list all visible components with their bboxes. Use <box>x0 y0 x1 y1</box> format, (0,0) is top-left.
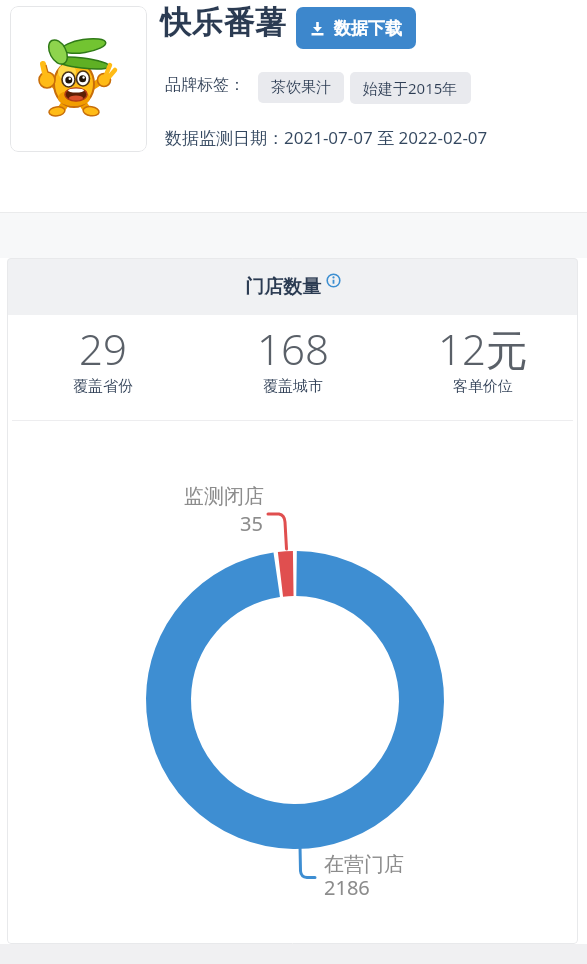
staticText: 茶饮果汁 <box>271 78 331 97</box>
button[interactable]: 始建于2015年 <box>350 72 471 104</box>
button[interactable] <box>10 6 147 152</box>
staticText: 168 <box>257 320 329 377</box>
staticText: 数据下载 <box>334 18 402 39</box>
button[interactable]: 29 <box>7 320 198 396</box>
staticText: 始建于2015年 <box>363 78 458 98</box>
staticText: 在营门店 <box>324 852 404 877</box>
staticText: 29 <box>79 320 127 377</box>
staticText: 2186 <box>324 874 370 901</box>
staticText: 门店数量 <box>245 275 321 299</box>
button[interactable]: 168 <box>198 320 388 396</box>
staticText: 监测闭店 <box>184 484 264 509</box>
staticText: 覆盖省份 <box>73 377 133 396</box>
button[interactable]: 数据下载 <box>296 7 416 49</box>
staticText: 12元 <box>438 320 528 377</box>
staticText: 35 <box>240 510 263 537</box>
staticText: 数据监测日期：2021-07-07 至 2022-02-07 <box>165 126 488 149</box>
staticText: 客单价位 <box>453 377 513 396</box>
staticText: 覆盖城市 <box>263 377 323 396</box>
button[interactable]: 茶饮果汁 <box>258 72 344 103</box>
staticText: 快乐番薯 <box>160 3 287 42</box>
button[interactable]: 12元 <box>388 320 578 396</box>
button[interactable]: 门店数量 <box>7 258 578 315</box>
staticText: 品牌标签： <box>165 75 245 95</box>
